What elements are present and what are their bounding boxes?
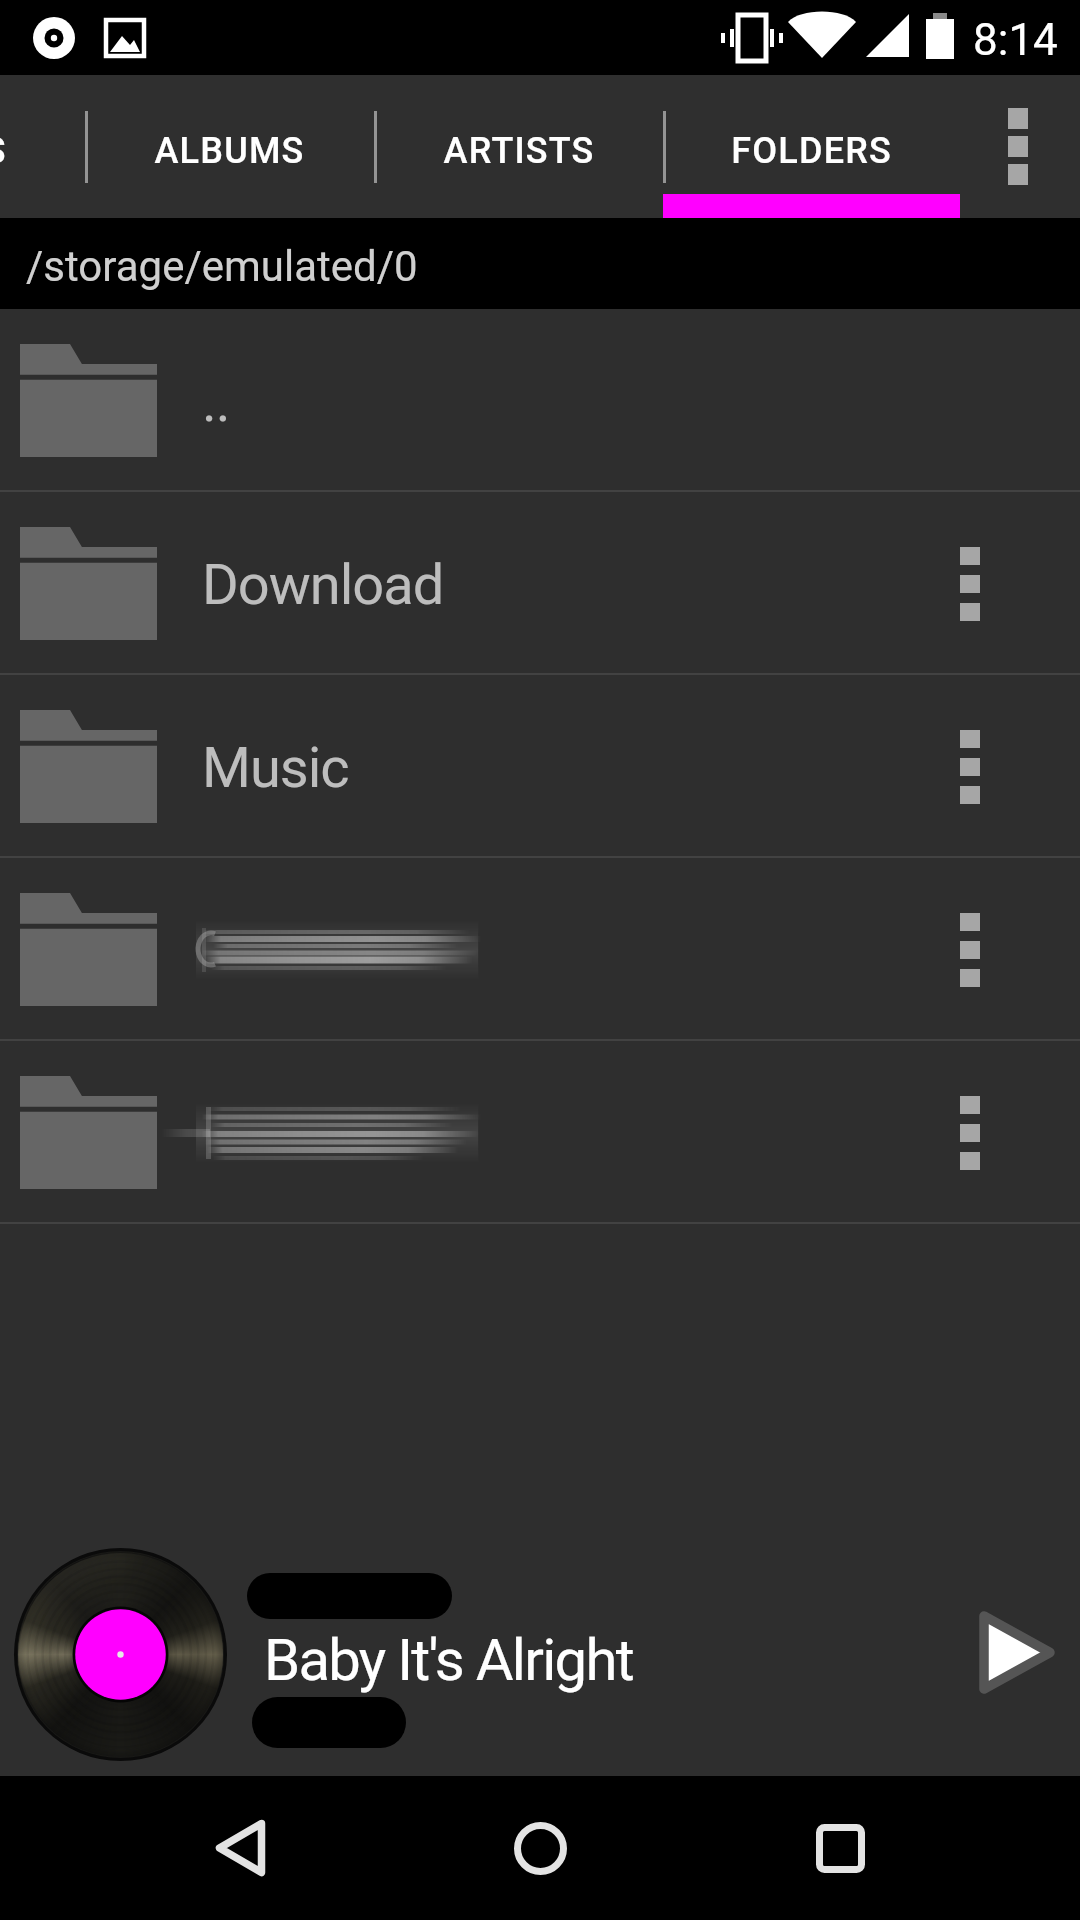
- staticText: 8:14: [973, 14, 1058, 66]
- button[interactable]: FOLDERS: [663, 75, 960, 218]
- button[interactable]: /storage/emulated/0: [0, 218, 1080, 309]
- button[interactable]: Recent apps: [780, 1776, 900, 1920]
- button[interactable]: ALBUMS: [85, 75, 374, 218]
- staticText: Music: [202, 735, 349, 801]
- staticText: Baby It's Alright: [264, 1626, 634, 1694]
- staticText: ..: [202, 369, 230, 435]
- button[interactable]: Folder options: [0, 1041, 1080, 1224]
- button[interactable]: Folder options: [0, 858, 1080, 1041]
- button[interactable]: ..: [0, 309, 1080, 492]
- button[interactable]: SONGS: [0, 75, 85, 218]
- button[interactable]: Folder options: [920, 858, 1020, 1041]
- button[interactable]: Back: [180, 1776, 300, 1920]
- button[interactable]: More options: [960, 75, 1080, 218]
- button[interactable]: Folder options: [920, 1041, 1020, 1224]
- staticText: Download: [202, 552, 444, 618]
- staticText: FOLDERS: [731, 130, 892, 172]
- button[interactable]: Folder options: [920, 675, 1020, 858]
- button[interactable]: Play: [950, 1527, 1080, 1776]
- button[interactable]: Baby It's Alright: [0, 1527, 1080, 1776]
- staticText: ALBUMS: [154, 130, 305, 172]
- button[interactable]: Folder options: [920, 492, 1020, 675]
- button[interactable]: Home: [480, 1776, 600, 1920]
- button[interactable]: Music: [0, 675, 1080, 858]
- button[interactable]: Download: [0, 492, 1080, 675]
- staticText: ARTISTS: [443, 130, 595, 172]
- staticText: /storage/emulated/0: [26, 242, 418, 291]
- button[interactable]: ARTISTS: [374, 75, 663, 218]
- staticText: SONGS: [0, 130, 7, 172]
